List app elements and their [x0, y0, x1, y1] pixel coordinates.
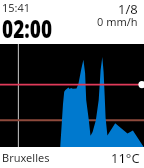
staticText: 15:41: [2, 0, 31, 15]
button[interactable]: Bruxelles: [0, 147, 144, 168]
staticText: 11°C: [111, 149, 140, 167]
staticText: Bruxelles: [2, 150, 50, 165]
staticText: 02:00: [2, 11, 52, 45]
button[interactable]: Precipitation graph: [0, 44, 144, 147]
staticText: 1/8: [118, 0, 138, 18]
staticText: 0 mm/h: [97, 14, 138, 29]
